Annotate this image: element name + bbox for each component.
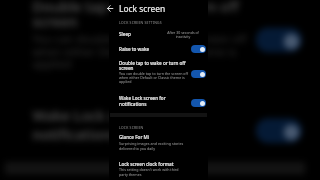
button[interactable]	[109, 28, 208, 40]
staticText: Lock screen	[119, 3, 166, 14]
staticText: Wake Lock screen for notifications	[119, 95, 177, 108]
button[interactable]	[109, 92, 208, 110]
staticText: LOCK SCREEN	[119, 125, 144, 130]
staticText: Lock screen clock format	[119, 161, 174, 167]
button[interactable]: Back	[103, 2, 116, 15]
staticText: After 30 seconds of inactivity	[165, 30, 201, 39]
button[interactable]	[109, 57, 208, 86]
staticText: Raise to wake	[119, 46, 150, 52]
button[interactable]	[1, 0, 308, 77]
button[interactable]	[109, 131, 208, 153]
staticText: Sleep	[119, 31, 131, 37]
staticText: You can double tap to turn the screen of…	[32, 30, 249, 71]
staticText: Surprising images and exciting stories d…	[119, 141, 185, 151]
staticText: Double tap to wake or turn off screen	[119, 60, 189, 71]
staticText: This setting doesn't work with third par…	[119, 167, 185, 177]
button[interactable]: Toggle	[191, 70, 206, 78]
staticText: You can double tap to turn the screen of…	[119, 71, 189, 84]
staticText: Double tap to wake or turn off screen	[32, 0, 249, 30]
button[interactable]: Toggle	[191, 45, 206, 53]
staticText: Glance For Mi	[119, 134, 150, 140]
staticText: LOCK SCREEN SETTINGS	[119, 20, 162, 25]
button[interactable]: Toggle	[256, 27, 302, 52]
button[interactable]	[1, 96, 308, 153]
button[interactable]: Toggle	[256, 118, 302, 143]
button[interactable]: Toggle	[191, 99, 206, 107]
staticText: Wake Lock screen for notifications	[32, 106, 212, 146]
button[interactable]	[109, 157, 208, 179]
button[interactable]	[109, 43, 208, 55]
